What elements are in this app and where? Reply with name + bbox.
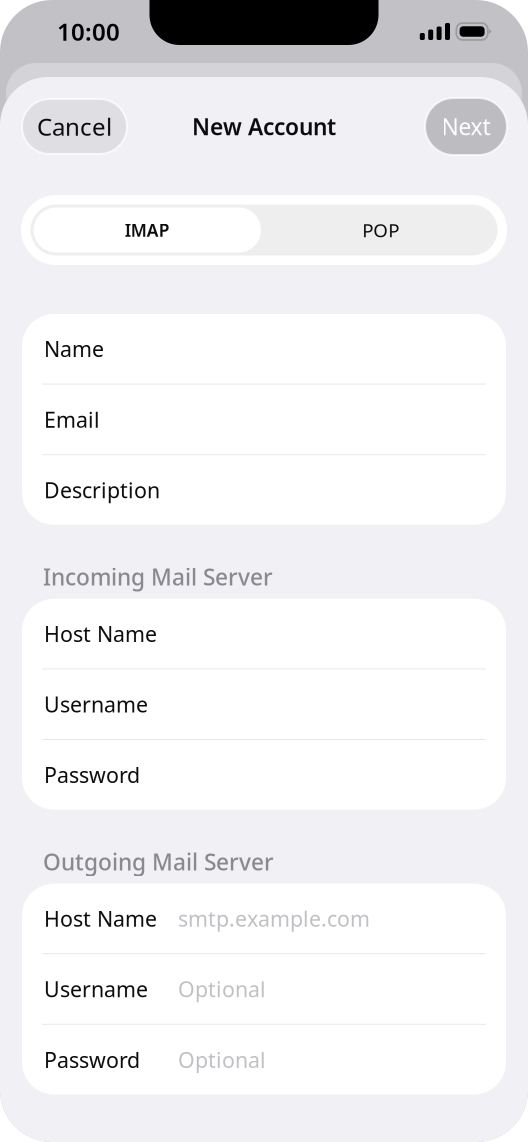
staticText: Host Name [44,904,157,932]
staticText: Name [44,335,104,363]
staticText: Description [44,476,160,504]
staticText: Cancel [37,111,112,142]
button[interactable]: Next [425,98,507,155]
staticText: POP [362,218,399,242]
staticText: Username [44,975,148,1003]
button[interactable]: Cancel [22,99,127,154]
staticText: Optional [178,1045,266,1074]
button[interactable]: Email [22,385,506,454]
button[interactable]: Username [22,954,506,1024]
staticText: Email [44,405,100,433]
staticText: Next [441,111,490,141]
staticText: 10:00 [57,16,120,47]
button[interactable]: Password [22,740,506,810]
button[interactable]: POP [264,204,497,255]
button[interactable]: Host Name [22,884,506,953]
staticText: Outgoing Mail Server [43,846,274,877]
button[interactable]: Password [22,1025,506,1094]
button[interactable]: Host Name [22,599,506,668]
staticText: Optional [178,975,266,1003]
staticText: Password [44,761,140,789]
staticText: Username [44,690,148,718]
button[interactable]: Description [22,455,506,525]
staticText: New Account [192,111,336,141]
staticText: smtp.example.com [178,904,370,932]
staticText: Incoming Mail Server [43,562,273,592]
staticText: Password [44,1045,140,1074]
staticText: IMAP [125,218,170,241]
button[interactable]: Username [22,669,506,739]
button[interactable]: IMAP [30,204,264,255]
button[interactable]: Name [22,314,506,384]
staticText: Host Name [44,619,157,648]
